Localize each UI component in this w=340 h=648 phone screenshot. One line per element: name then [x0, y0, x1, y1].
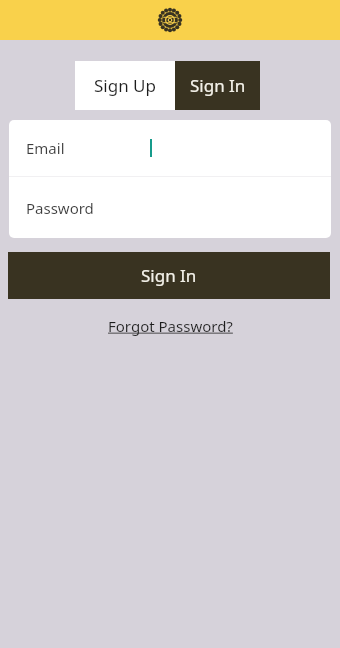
staticText: Sign In	[141, 264, 197, 287]
button[interactable]: Sign In	[175, 61, 260, 110]
button[interactable]: Sign Up	[75, 61, 175, 110]
button[interactable]: Sign In	[8, 252, 330, 299]
button[interactable]: Password	[9, 177, 331, 238]
staticText: Forgot Password?	[108, 316, 233, 336]
staticText: Sign In	[190, 74, 246, 97]
other: App logo	[158, 8, 182, 32]
staticText: Sign Up	[94, 74, 156, 97]
button[interactable]: Email	[9, 120, 331, 176]
staticText: Email	[26, 138, 65, 158]
button[interactable]: Forgot Password?	[102, 313, 239, 339]
staticText: Password	[26, 198, 94, 218]
